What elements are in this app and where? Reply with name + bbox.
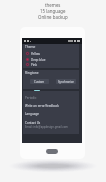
button[interactable]: Synchronize [56, 79, 76, 84]
staticText: Write an error/feedback [25, 104, 59, 108]
button[interactable]: Custom [30, 79, 49, 84]
staticText: 15 language [40, 8, 66, 14]
button[interactable]: Deep blue [23, 57, 79, 62]
staticText: themes [45, 2, 61, 8]
staticText: Yellow [31, 52, 40, 56]
button[interactable]: Pink [23, 62, 79, 67]
staticText: Contact Us [25, 121, 41, 125]
staticText: Custom [34, 80, 45, 84]
staticText: Theme [25, 45, 36, 49]
staticText: Email: info@appdesign.gmail.com [25, 125, 68, 129]
staticText: Pink [31, 63, 38, 67]
staticText: Periodic [25, 96, 37, 100]
staticText: Synchronize [58, 80, 74, 84]
staticText: Language [25, 112, 40, 116]
staticText: Deep blue [31, 58, 46, 62]
button[interactable]: Contact Us [23, 120, 79, 125]
staticText: Online backup [38, 14, 68, 20]
button[interactable]: Yellow [23, 51, 79, 56]
button[interactable]: Write an error/feedback [23, 103, 79, 108]
button[interactable]: Language [23, 111, 79, 116]
staticText: Ringtone [25, 71, 39, 75]
